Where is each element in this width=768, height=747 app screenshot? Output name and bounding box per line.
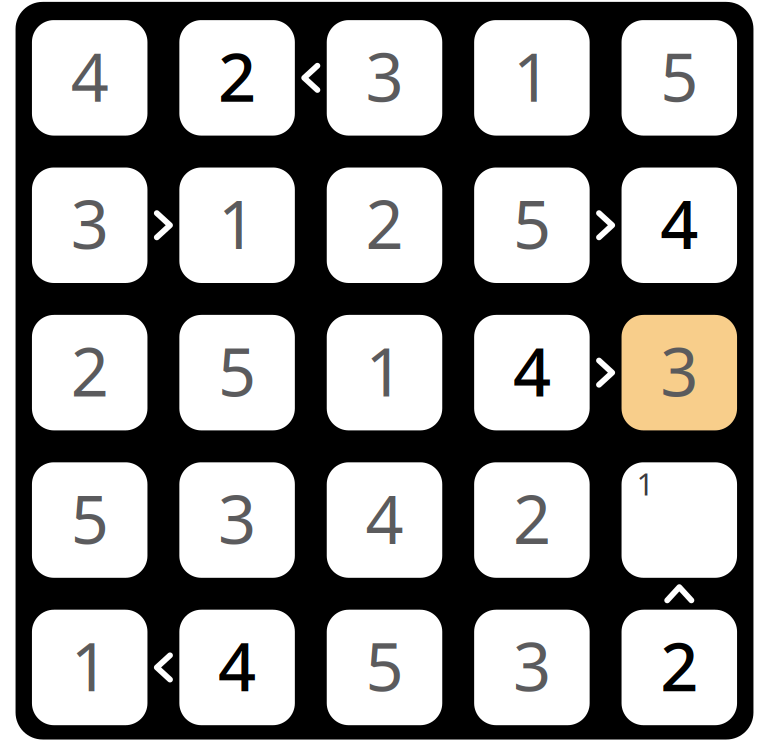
button[interactable]: Row 5, column 1, 1 xyxy=(32,610,147,725)
staticText: 4 xyxy=(660,179,698,267)
button[interactable]: Row 2, column 5, given 4 xyxy=(621,167,737,283)
staticText: 1 xyxy=(513,32,551,120)
button[interactable]: Row 5, column 3, 5 xyxy=(327,610,442,725)
button[interactable]: Row 4, column 4, 2 xyxy=(474,462,590,578)
button[interactable]: Row 4, column 3, 4 xyxy=(327,462,442,578)
button[interactable]: Row 3, column 2, 5 xyxy=(179,315,295,430)
staticText: 3 xyxy=(513,621,551,710)
button[interactable]: Row 5, column 5, given 2 xyxy=(621,610,737,725)
button[interactable]: Row 1, column 1, 4 xyxy=(32,20,147,136)
staticText: 2 xyxy=(218,32,256,120)
button[interactable]: Row 3, column 1, 2 xyxy=(32,315,147,430)
staticText: 2 xyxy=(660,621,698,710)
staticText: 1 xyxy=(71,621,109,710)
staticText: 1 xyxy=(218,179,256,267)
button[interactable]: Row 5, column 2, given 4 xyxy=(179,610,295,725)
button[interactable]: Row 2, column 4, 5 xyxy=(474,167,590,283)
button[interactable]: Row 2, column 2, 1 xyxy=(179,167,295,283)
staticText: 3 xyxy=(660,326,698,415)
button[interactable]: Row 3, column 5, 3 xyxy=(621,315,737,430)
button[interactable]: Row 2, column 3, 2 xyxy=(327,167,442,283)
button[interactable]: Row 4, column 5, empty, note 1 xyxy=(621,462,737,578)
button[interactable]: Row 1, column 5, 5 xyxy=(621,20,737,136)
staticText: 2 xyxy=(513,474,551,562)
button[interactable]: Row 2, column 1, 3 xyxy=(32,167,147,283)
button[interactable]: Row 4, column 2, 3 xyxy=(179,462,295,578)
staticText: 1 xyxy=(636,463,654,504)
staticText: 3 xyxy=(365,32,403,120)
staticText: 5 xyxy=(365,621,403,710)
staticText: 5 xyxy=(218,326,256,415)
button[interactable]: Row 1, column 2, given 2 xyxy=(179,20,295,136)
staticText: 4 xyxy=(218,621,256,710)
staticText: 3 xyxy=(218,474,256,562)
staticText: 4 xyxy=(365,474,403,562)
staticText: 2 xyxy=(365,179,403,267)
staticText: 5 xyxy=(660,32,698,120)
staticText: 3 xyxy=(71,179,109,267)
button[interactable]: Row 3, column 4, given 4 xyxy=(474,315,590,430)
button[interactable]: Row 1, column 4, 1 xyxy=(474,20,590,136)
button[interactable]: Row 5, column 4, 3 xyxy=(474,610,590,725)
button[interactable]: Row 4, column 1, 5 xyxy=(32,462,147,578)
staticText: 1 xyxy=(365,326,403,415)
button[interactable]: Row 1, column 3, 3 xyxy=(327,20,442,136)
staticText: 4 xyxy=(71,32,109,120)
staticText: 2 xyxy=(71,326,109,415)
staticText: 5 xyxy=(513,179,551,267)
staticText: 4 xyxy=(513,326,551,415)
button[interactable]: Row 3, column 3, 1 xyxy=(327,315,442,430)
staticText: 5 xyxy=(71,474,109,562)
